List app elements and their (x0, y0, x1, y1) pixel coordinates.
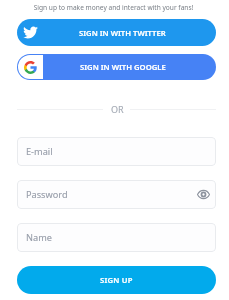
staticText: SIGN IN WITH TWITTER (79, 28, 166, 38)
staticText: Name (26, 231, 52, 244)
staticText: Sign up to make money and interact with … (0, 3, 228, 12)
staticText: SIGN UP (100, 275, 133, 285)
button[interactable]: SIGN UP (17, 266, 216, 294)
button[interactable]: Name (17, 223, 216, 252)
button[interactable]: SIGN IN WITH TWITTER (17, 19, 216, 46)
button[interactable]: Password (17, 180, 216, 209)
button[interactable]: E-mail (17, 137, 216, 166)
staticText: SIGN IN WITH GOOGLE (80, 62, 166, 72)
staticText: E-mail (26, 145, 53, 158)
other: Twitter (23, 25, 38, 40)
staticText: OR (111, 103, 124, 115)
button[interactable]: Show password (196, 187, 210, 201)
staticText: Password (26, 188, 68, 201)
button[interactable]: SIGN IN WITH GOOGLE (17, 54, 216, 80)
